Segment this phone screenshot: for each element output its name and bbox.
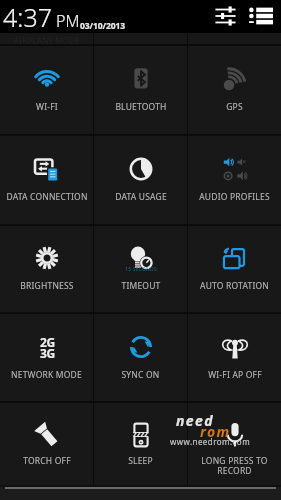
staticText: www.needrom.com bbox=[170, 436, 251, 447]
staticText: LONG PRESS TO RECORD bbox=[191, 455, 278, 476]
staticText: AUDIO PROFILES bbox=[199, 191, 270, 203]
staticText: BLUETOOTH bbox=[115, 101, 167, 113]
staticText: SYNC ON bbox=[121, 369, 160, 381]
staticText: TORCH OFF bbox=[23, 455, 71, 467]
button[interactable]: DATA CONNECTION bbox=[0, 136, 93, 224]
button[interactable]: TORCH OFF bbox=[0, 403, 93, 485]
staticText: SLEEP bbox=[128, 455, 153, 467]
staticText: need bbox=[176, 411, 214, 430]
staticText: PM bbox=[56, 10, 80, 32]
staticText: NETWORK MODE bbox=[11, 369, 82, 381]
staticText: 03/10/2013 bbox=[80, 20, 125, 32]
button[interactable]: AUTO ROTATION bbox=[188, 226, 281, 312]
button[interactable]: 2G 3G bbox=[0, 314, 93, 401]
staticText: rom bbox=[200, 422, 231, 441]
staticText: DATA USAGE bbox=[115, 191, 167, 203]
button[interactable]: 15 SECONDS bbox=[94, 226, 187, 312]
staticText: 4:37 bbox=[3, 0, 52, 33]
staticText: AUTO ROTATION bbox=[200, 280, 269, 292]
button[interactable]: SYNC ON bbox=[94, 314, 187, 401]
staticText: DATA CONNECTION bbox=[6, 191, 88, 203]
staticText: BRIGHTNESS bbox=[20, 280, 74, 292]
button[interactable]: ZZZZ bbox=[94, 403, 187, 485]
staticText: ZZZZ bbox=[133, 430, 149, 440]
button[interactable]: AUDIO PROFILES bbox=[188, 136, 281, 224]
button[interactable]: Notifications bbox=[249, 7, 273, 25]
staticText: AIRPLANE MODE bbox=[14, 35, 80, 46]
staticText: 2G 3G bbox=[40, 334, 55, 361]
button[interactable]: GPS bbox=[188, 46, 281, 134]
button[interactable]: BRIGHTNESS bbox=[0, 226, 93, 312]
button[interactable]: Drag handle bbox=[0, 485, 281, 500]
staticText: 15 SECONDS bbox=[125, 266, 157, 273]
staticText: GPS bbox=[226, 101, 243, 113]
staticText: WI-FI bbox=[36, 101, 58, 113]
button[interactable]: BLUETOOTH bbox=[94, 46, 187, 134]
button[interactable]: WI-FI AP OFF bbox=[188, 314, 281, 401]
button[interactable]: WI-FI bbox=[0, 46, 93, 134]
button[interactable]: DATA USAGE bbox=[94, 136, 187, 224]
staticText: WI-FI AP OFF bbox=[208, 369, 262, 381]
staticText: TIMEOUT bbox=[121, 280, 161, 292]
button[interactable]: Quick settings bbox=[215, 7, 236, 25]
button[interactable]: LONG PRESS TO RECORD bbox=[188, 403, 281, 485]
